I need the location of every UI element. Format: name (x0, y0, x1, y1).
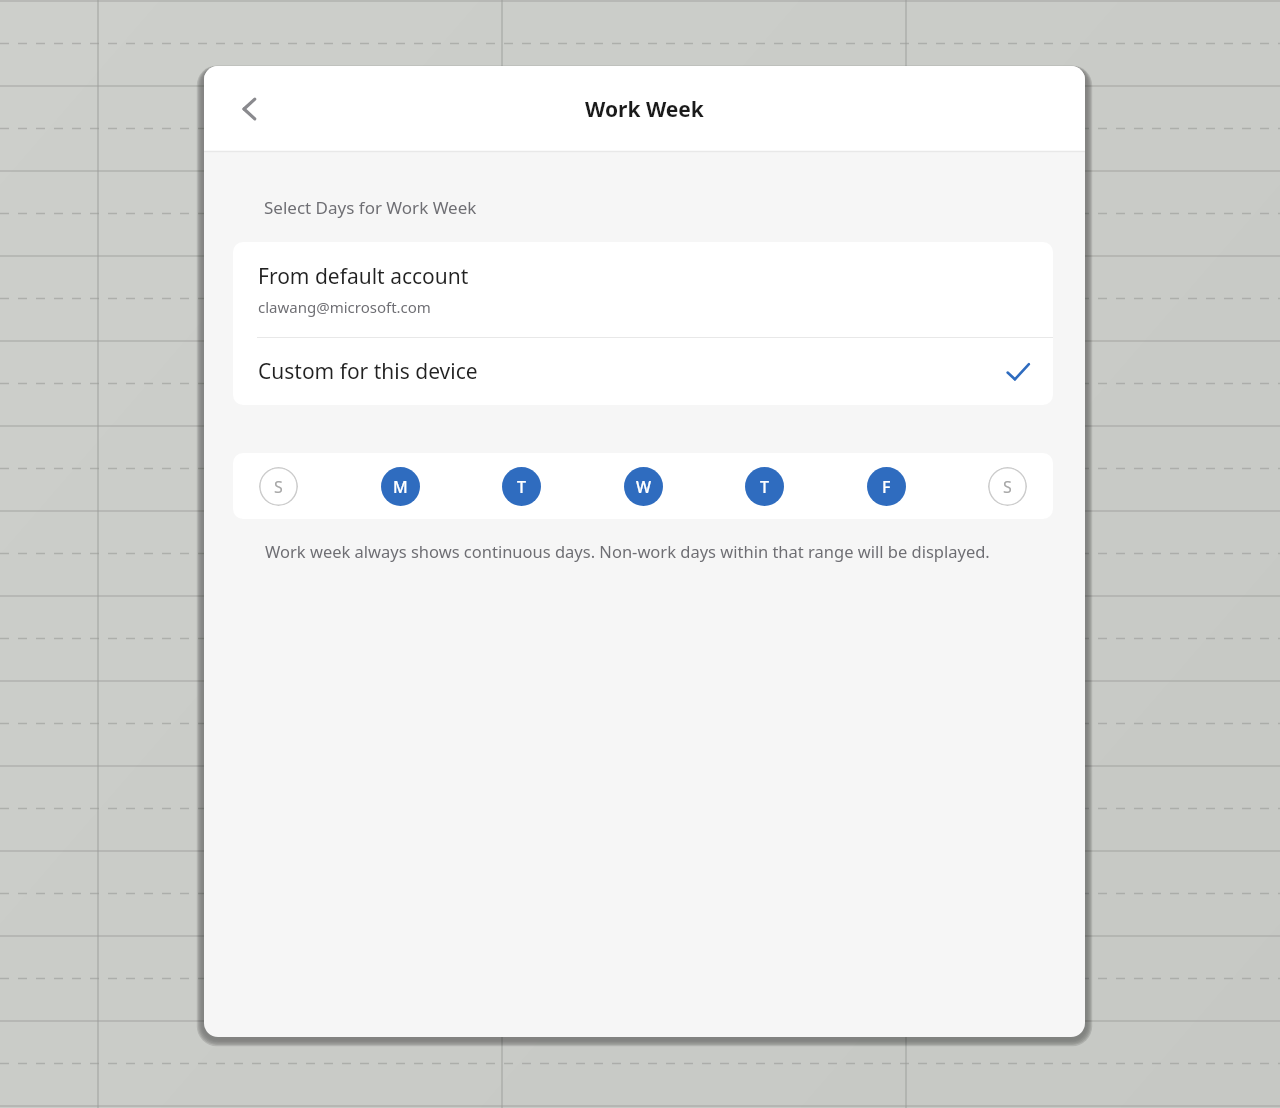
button[interactable]: W (624, 467, 663, 506)
staticText: M (393, 476, 408, 498)
staticText: S (1003, 476, 1012, 498)
staticText: Work Week (585, 95, 704, 124)
button[interactable]: T (502, 467, 541, 506)
button[interactable]: S (259, 467, 298, 506)
staticText: F (882, 476, 891, 498)
staticText: Select Days for Work Week (264, 196, 477, 219)
staticText: T (760, 476, 769, 498)
staticText: T (517, 476, 526, 498)
button[interactable]: From default account (233, 242, 1053, 337)
button[interactable]: Back (224, 83, 276, 135)
staticText: From default account (258, 262, 469, 291)
button[interactable]: S (988, 467, 1027, 506)
staticText: Custom for this device (258, 357, 478, 386)
staticText: W (636, 476, 652, 498)
button[interactable]: Custom for this device (233, 338, 1053, 405)
button[interactable]: F (867, 467, 906, 506)
button[interactable]: M (381, 467, 420, 506)
button[interactable]: T (745, 467, 784, 506)
staticText: Work week always shows continuous days. … (265, 540, 990, 562)
staticText: S (274, 476, 283, 498)
staticText: clawang@microsoft.com (258, 297, 431, 317)
